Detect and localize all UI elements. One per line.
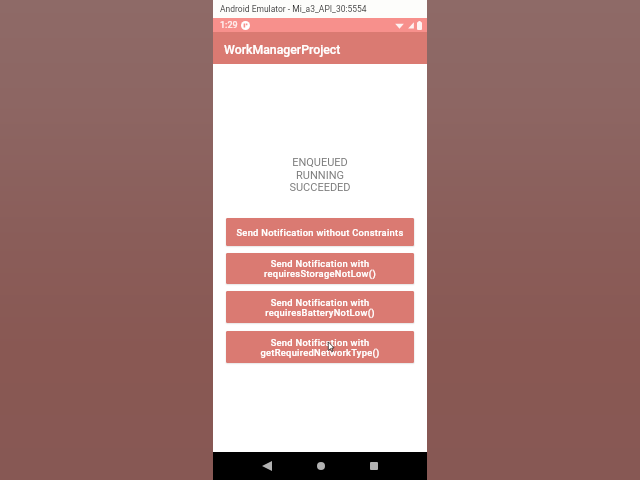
staticText: WorkManagerProject [224,43,341,57]
staticText: Send Notification without Constraints [236,227,404,238]
staticText: Send Notification with requiresBatteryNo… [265,297,375,318]
button[interactable]: Home [294,452,347,480]
button[interactable]: Send Notification with requiresStorageNo… [226,253,414,284]
staticText: Android Emulator - Mi_a3_API_30:5554 [220,4,367,14]
staticText: 1:29 [220,20,238,31]
staticText: ENQUEUED RUNNING SUCCEEDED [289,156,351,193]
button[interactable]: Recent apps [347,452,400,480]
button[interactable]: Send Notification with requiresBatteryNo… [226,291,414,323]
button[interactable]: Back [240,452,294,480]
button[interactable]: Send Notification with getRequiredNetwor… [226,331,414,363]
button[interactable]: Send Notification without Constraints [226,218,414,246]
staticText: Send Notification with requiresStorageNo… [264,258,376,279]
staticText: Send Notification with getRequiredNetwor… [260,337,380,358]
